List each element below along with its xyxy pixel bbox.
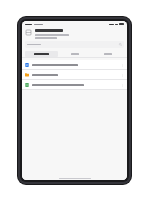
button[interactable]: More options [120,73,124,77]
button[interactable]: Menu [25,29,32,36]
button[interactable] [25,51,58,57]
button[interactable]: More options [120,83,124,87]
button[interactable]: More options [22,60,127,69]
button[interactable]: More options [120,63,124,67]
button[interactable] [58,51,91,57]
button[interactable] [91,51,124,57]
button[interactable]: More options [22,80,127,89]
button[interactable]: More options [22,70,127,79]
button[interactable] [25,41,124,48]
